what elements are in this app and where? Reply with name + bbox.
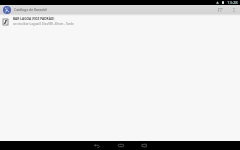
button[interactable]: Back (92, 141, 101, 150)
button[interactable]: Home (116, 141, 125, 150)
staticText: 13:28 (227, 0, 238, 5)
staticText: BAR LAGOA (VOZ PADRÃO) (13, 17, 55, 21)
button[interactable]: Recent apps (139, 141, 148, 150)
staticText: Catálogo de Karaokê (14, 7, 48, 12)
button[interactable]: More options (229, 5, 238, 14)
button[interactable]: Toggle list view (216, 5, 225, 14)
button[interactable]: BAR LAGOA (VOZ PADRÃO) (0, 16, 240, 27)
staticText: ao vivo/bar Lagoa/4 Dias/BR. 40min - Tar… (13, 22, 74, 26)
